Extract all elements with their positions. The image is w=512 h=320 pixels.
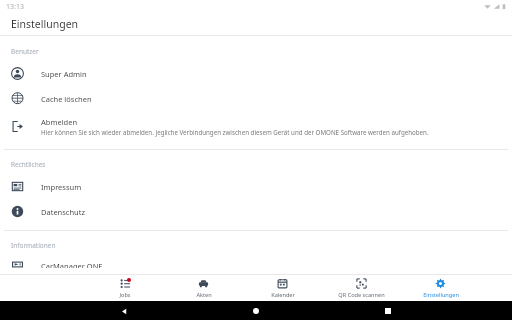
- staticText: Abmelden: [41, 117, 78, 127]
- staticText: Impressum: [41, 182, 82, 192]
- button[interactable]: Super Admin: [0, 61, 512, 86]
- staticText: Cache löschen: [41, 94, 92, 104]
- button[interactable]: Impressum: [0, 174, 512, 199]
- staticText: Rechtliches: [11, 160, 46, 169]
- staticText: Akten: [196, 291, 212, 299]
- button[interactable]: Cache löschen: [0, 86, 512, 111]
- button[interactable]: Back: [116, 303, 132, 319]
- other: Impressum: [11, 180, 24, 193]
- other: Abmelden: [11, 120, 24, 133]
- button[interactable]: CarManager ONE: [0, 255, 512, 274]
- button[interactable]: Jobs: [86, 276, 164, 301]
- button[interactable]: QR Code scannen: [322, 276, 401, 301]
- button[interactable]: Akten: [164, 276, 243, 301]
- button[interactable]: Abmelden: [0, 111, 512, 142]
- button[interactable]: Einstellungen: [401, 276, 480, 301]
- staticText: Hier können Sie sich wieder abmelden. Je…: [41, 128, 429, 136]
- staticText: 13:13: [6, 2, 24, 12]
- staticText: Einstellungen: [11, 17, 79, 31]
- staticText: CarManager ONE: [41, 261, 103, 268]
- staticText: Datenschutz: [41, 207, 85, 217]
- button[interactable]: Kalender: [243, 276, 322, 301]
- button[interactable]: Recent apps: [380, 303, 396, 319]
- other: Super Admin: [11, 67, 24, 80]
- staticText: Benutzer: [11, 47, 39, 56]
- staticText: Einstellungen: [423, 291, 459, 299]
- other: Datenschutz: [11, 205, 24, 218]
- staticText: Super Admin: [41, 69, 87, 79]
- staticText: QR Code scannen: [338, 291, 385, 299]
- button[interactable]: Datenschutz: [0, 199, 512, 224]
- button[interactable]: Home: [248, 303, 264, 319]
- staticText: Kalender: [271, 291, 295, 299]
- staticText: Jobs: [119, 291, 131, 299]
- other: Cache löschen: [11, 92, 24, 105]
- other: CarManager ONE: [11, 261, 24, 268]
- staticText: Informationen: [11, 241, 56, 250]
